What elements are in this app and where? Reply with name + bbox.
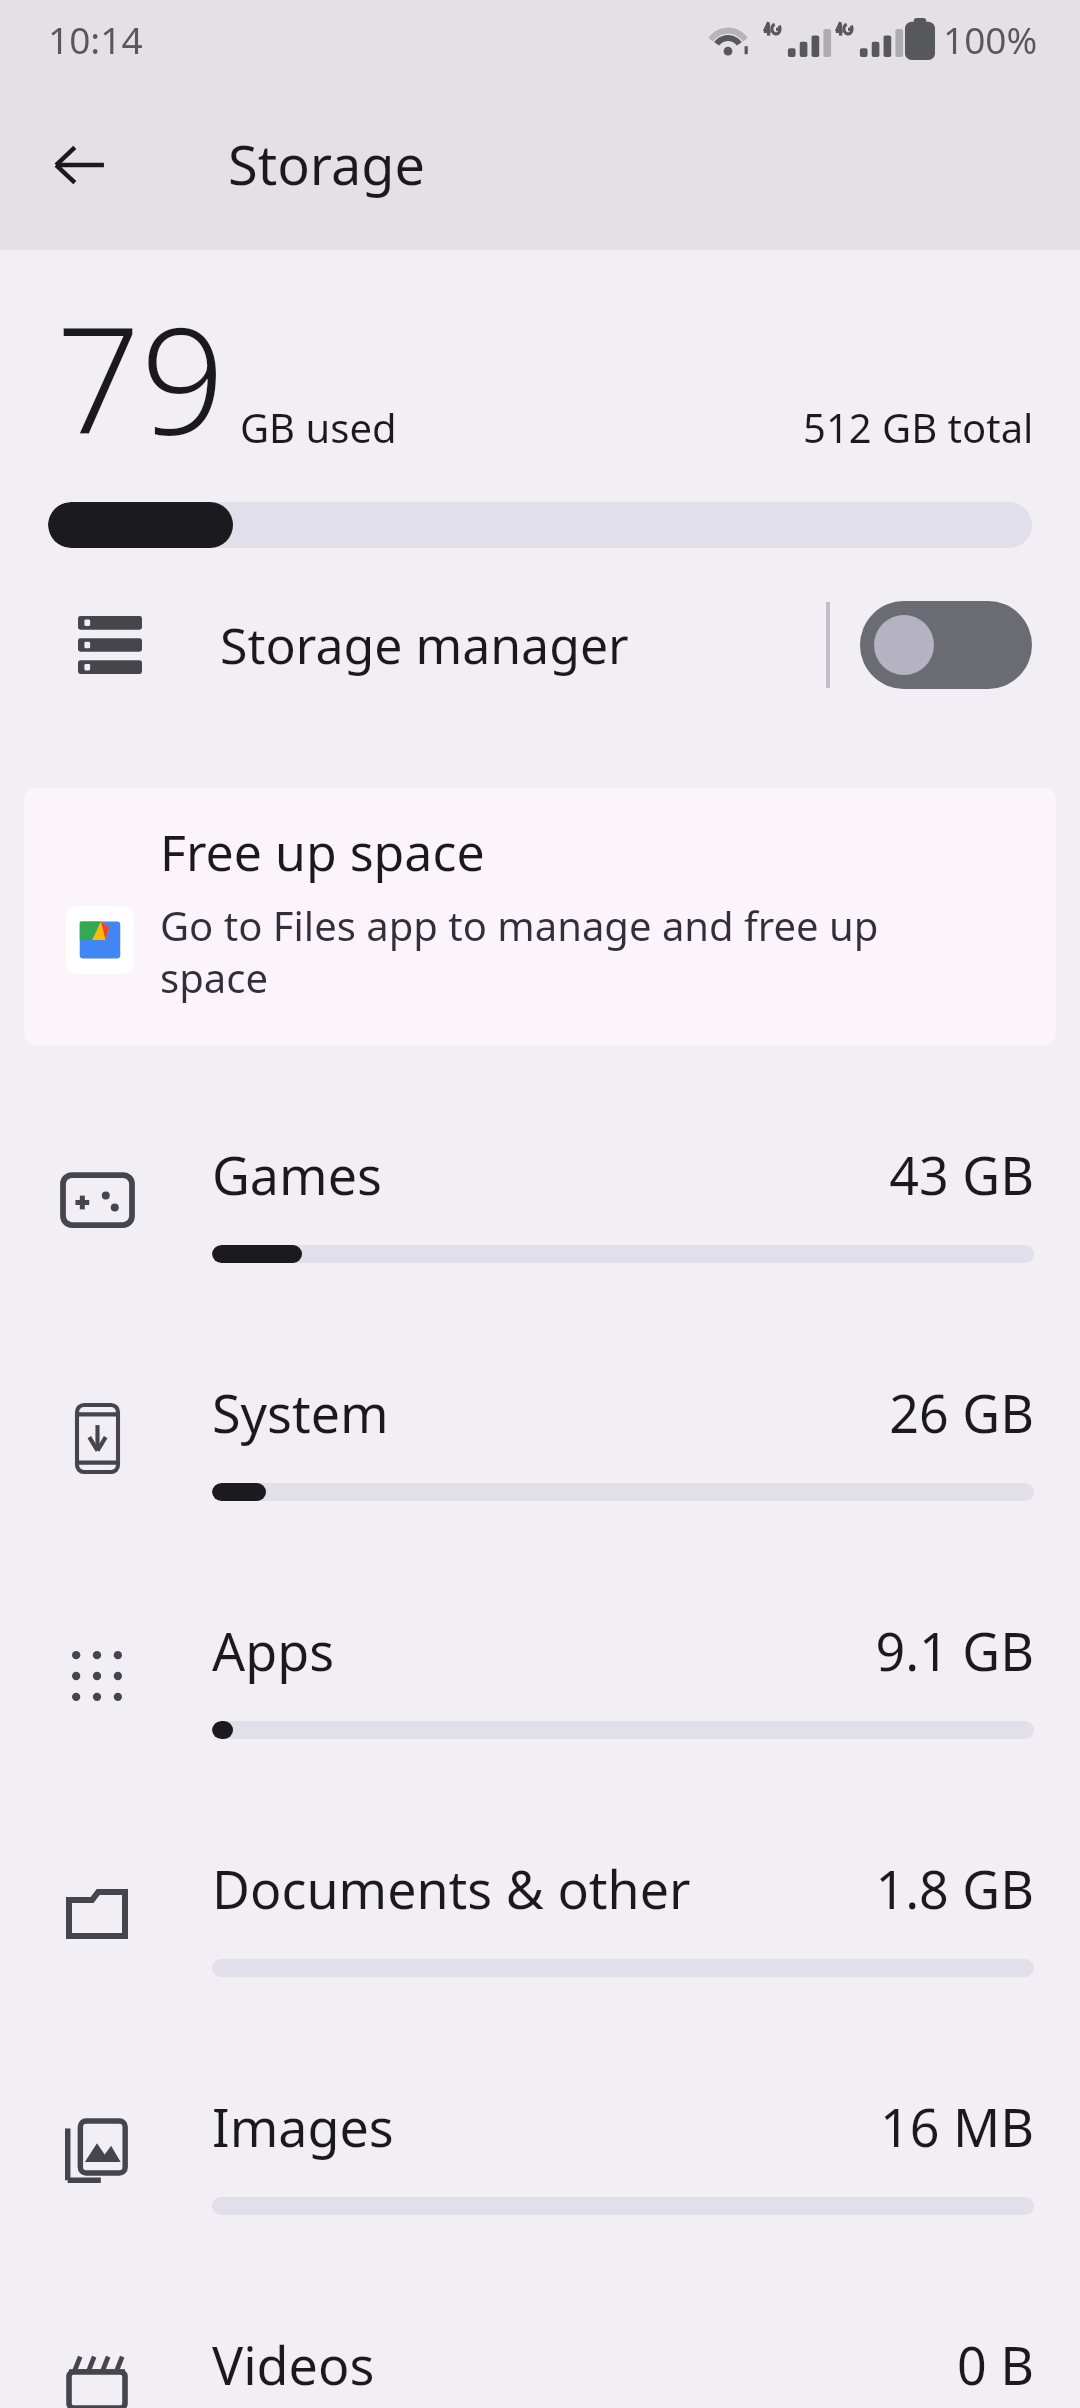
staticText: Go to Files app to manage and free up sp… xyxy=(160,898,996,1005)
staticText: 79 xyxy=(56,276,226,478)
staticText: 0 B xyxy=(956,2329,1034,2400)
staticText: Documents & other xyxy=(212,1853,691,1924)
button[interactable]: Games xyxy=(0,1103,1080,1341)
button[interactable]: Storage manager xyxy=(0,570,1080,720)
staticText: System xyxy=(212,1377,389,1448)
staticText: 16 MB xyxy=(880,2091,1034,2162)
button[interactable]: Images xyxy=(0,2055,1080,2293)
staticText: 43 GB xyxy=(889,1139,1034,1210)
button[interactable]: System xyxy=(0,1341,1080,1579)
staticText: 512 GB total xyxy=(803,400,1034,454)
button[interactable]: Storage manager toggle xyxy=(860,601,1032,689)
staticText: Storage xyxy=(228,127,425,201)
staticText: Images xyxy=(212,2091,394,2162)
staticText: 10:14 xyxy=(48,14,143,64)
staticText: Videos xyxy=(212,2329,375,2400)
button[interactable]: Videos xyxy=(0,2293,1080,2408)
staticText: Apps xyxy=(212,1615,335,1686)
staticText: 100% xyxy=(943,14,1038,64)
staticText: 9.1 GB xyxy=(875,1615,1034,1686)
button[interactable]: Back xyxy=(30,114,130,214)
staticText: GB used xyxy=(240,400,397,454)
button[interactable]: Apps xyxy=(0,1579,1080,1817)
button[interactable]: Documents & other xyxy=(0,1817,1080,2055)
staticText: 26 GB xyxy=(889,1377,1034,1448)
staticText: 1.8 GB xyxy=(875,1853,1034,1924)
staticText: Games xyxy=(212,1139,382,1210)
staticText: Storage manager xyxy=(220,611,629,679)
staticText: Free up space xyxy=(160,818,485,886)
button[interactable]: Free up space xyxy=(24,788,1056,1045)
